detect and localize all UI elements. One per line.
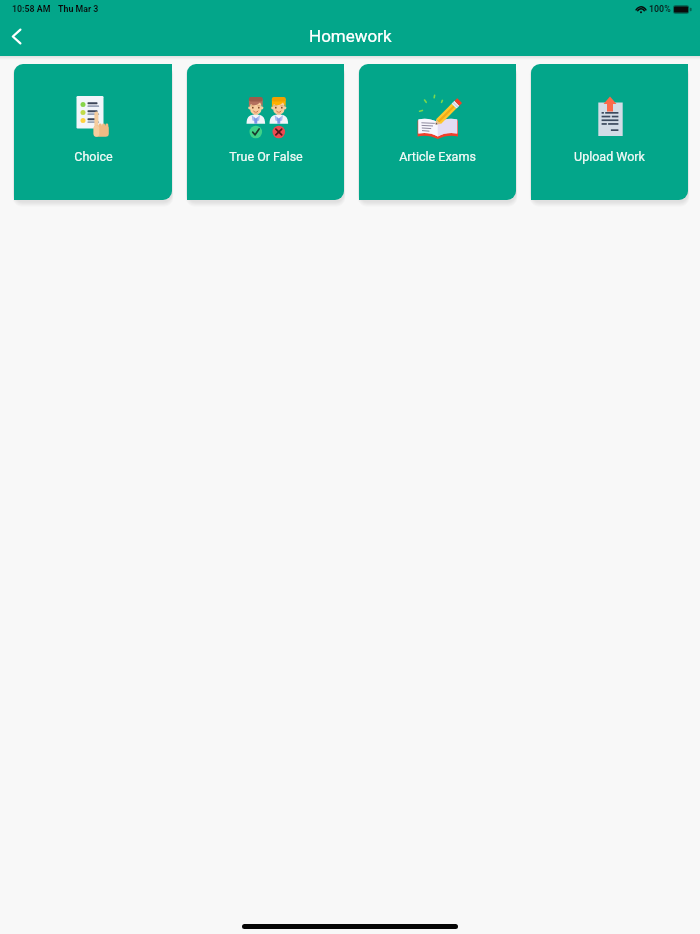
staticText: Thu Mar 3 [58, 4, 99, 14]
staticText: Upload Work [574, 149, 645, 164]
staticText: Article Exams [399, 149, 476, 164]
button[interactable]: Upload Work [531, 64, 688, 200]
button[interactable]: Choice [14, 64, 172, 200]
staticText: True Or False [229, 149, 303, 164]
staticText: Homework [309, 26, 392, 46]
staticText: 100% [649, 4, 671, 14]
button[interactable]: Back [0, 18, 36, 56]
staticText: 10:58 AM [12, 4, 51, 14]
staticText: Choice [74, 149, 113, 164]
button[interactable]: True Or False [187, 64, 344, 200]
button[interactable]: Article Exams [359, 64, 516, 200]
